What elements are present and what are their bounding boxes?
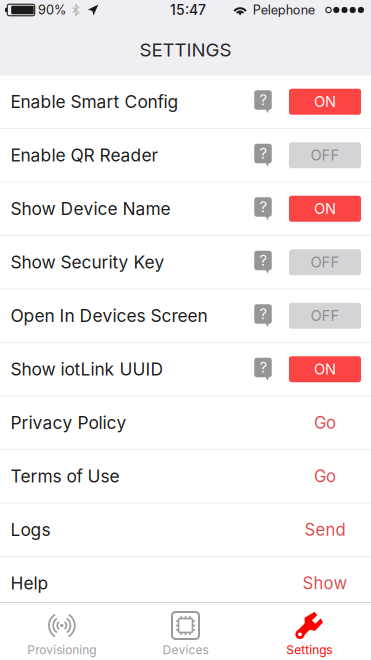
staticText: Settings (286, 643, 332, 657)
staticText: ON (314, 360, 336, 378)
staticText: 15:47 (170, 1, 206, 18)
staticText: Provisioning (27, 643, 96, 657)
staticText: OFF (310, 253, 339, 271)
button[interactable]: About Open In Devices Screen (248, 289, 278, 342)
staticText: OFF (310, 146, 339, 164)
button[interactable]: Privacy Policy (0, 396, 371, 449)
button[interactable]: Provisioning (0, 603, 124, 660)
staticText: ? (259, 91, 266, 109)
staticText: Enable Smart Config (10, 91, 178, 112)
staticText: Go (314, 413, 336, 433)
button[interactable]: Logs (0, 503, 371, 556)
staticText: Privacy Policy (10, 412, 126, 433)
staticText: 90% (38, 2, 66, 18)
staticText: Send (304, 520, 345, 540)
staticText: Devices (162, 643, 208, 657)
button[interactable]: Help (0, 557, 371, 609)
staticText: Help (10, 573, 48, 594)
staticText: Pelephone (253, 2, 315, 18)
staticText: SETTINGS (139, 38, 231, 61)
button[interactable]: ON (289, 75, 361, 128)
staticText: Terms of Use (10, 466, 119, 487)
staticText: ? (259, 305, 266, 323)
button[interactable]: ON (289, 182, 361, 235)
button[interactable]: About Show Security Key (248, 236, 278, 288)
staticText: Go (314, 466, 336, 486)
button[interactable]: Settings (247, 603, 371, 660)
button[interactable]: OFF (289, 236, 361, 288)
staticText: Show (302, 573, 347, 593)
button[interactable]: About Show iotLink UUID (248, 343, 278, 395)
button[interactable]: ON (289, 343, 361, 395)
button[interactable]: Terms of Use (0, 450, 371, 502)
staticText: ON (314, 93, 336, 111)
staticText: ? (259, 198, 266, 216)
button[interactable]: OFF (289, 289, 361, 342)
staticText: ? (259, 359, 266, 376)
staticText: Show Security Key (10, 252, 164, 273)
button[interactable]: About Enable QR Reader (248, 129, 278, 181)
staticText: Logs (10, 519, 50, 540)
staticText: ? (259, 145, 266, 162)
staticText: Enable QR Reader (10, 145, 158, 166)
button[interactable]: Devices (124, 603, 247, 660)
staticText: ON (314, 200, 336, 218)
staticText: Show iotLink UUID (10, 359, 163, 380)
staticText: OFF (310, 307, 339, 325)
button[interactable]: OFF (289, 129, 361, 181)
staticText: Show Device Name (10, 198, 170, 219)
button[interactable]: About Show Device Name (248, 182, 278, 235)
staticText: ? (259, 252, 266, 269)
staticText: Open In Devices Screen (10, 305, 207, 326)
button[interactable]: About Enable Smart Config (248, 75, 278, 128)
